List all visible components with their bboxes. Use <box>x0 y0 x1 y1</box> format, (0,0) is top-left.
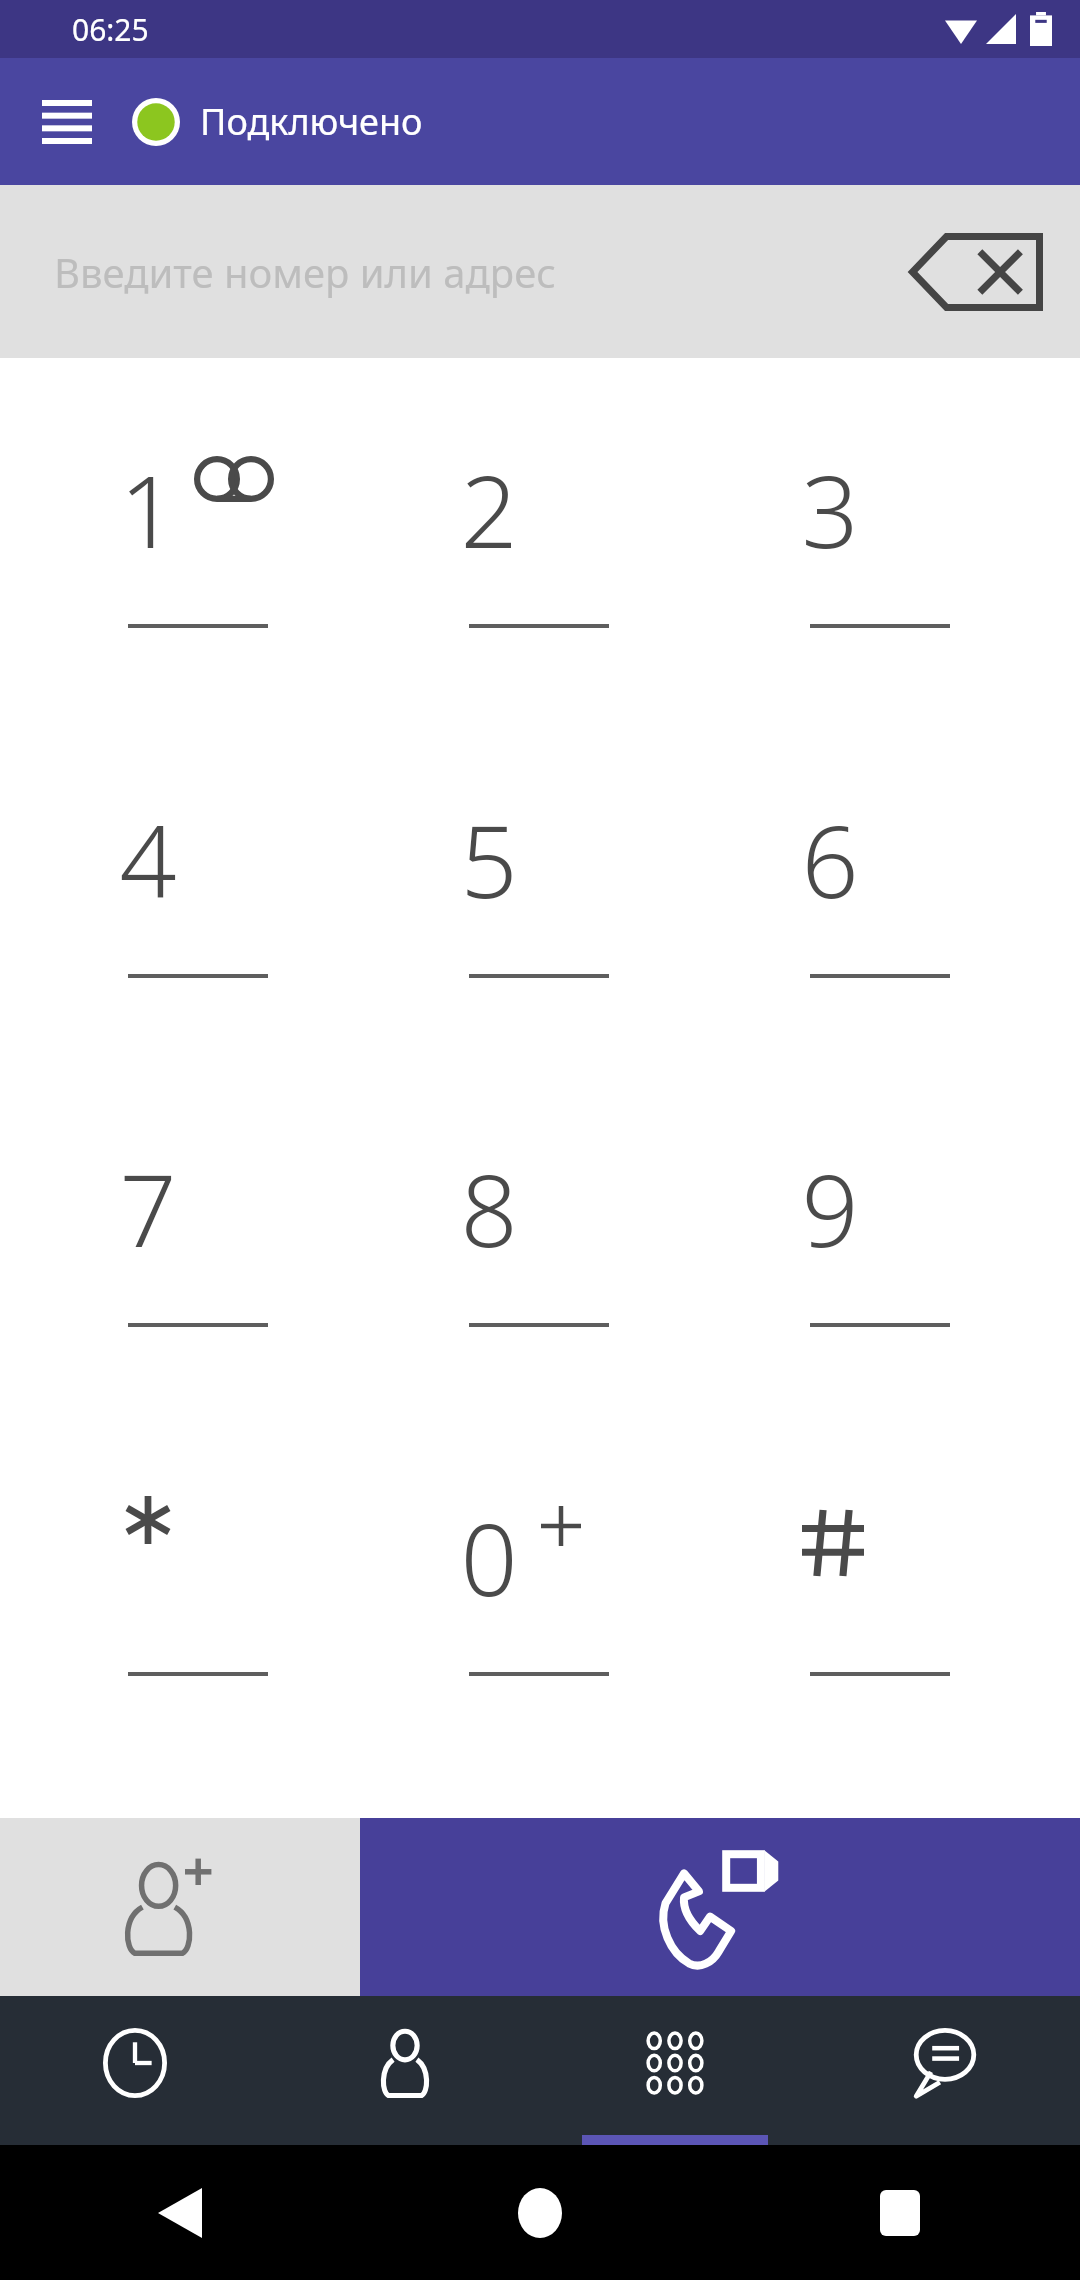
button[interactable]: Добавить контакт <box>0 1818 360 1996</box>
button[interactable]: 4 <box>28 724 368 1044</box>
button[interactable]: Контакты <box>270 1996 540 2145</box>
button[interactable]: 7 <box>28 1073 368 1393</box>
staticText: 7 <box>119 1140 177 1276</box>
staticText: 5 <box>460 791 518 927</box>
button[interactable]: Клавиатура <box>540 1996 810 2145</box>
staticText: 3 <box>801 441 859 577</box>
button[interactable]: Удалить <box>896 207 1056 337</box>
button[interactable]: 0 <box>369 1422 709 1742</box>
staticText: 8 <box>460 1140 518 1276</box>
staticText: 1 <box>119 441 177 577</box>
staticText: 06:25 <box>72 9 149 50</box>
staticText: 6 <box>801 791 859 927</box>
button[interactable]: Меню <box>22 77 112 167</box>
button[interactable]: Главный экран <box>360 2145 720 2280</box>
button[interactable]: 8 <box>369 1073 709 1393</box>
button[interactable]: Сообщения <box>810 1996 1080 2145</box>
button[interactable]: 6 <box>710 724 1050 1044</box>
button[interactable]: 5 <box>369 724 709 1044</box>
button[interactable] <box>710 1422 1050 1742</box>
button[interactable]: 3 <box>710 374 1050 694</box>
staticText: 9 <box>801 1140 859 1276</box>
staticText: 0 <box>460 1489 518 1625</box>
button[interactable]: 1 <box>28 374 368 694</box>
button[interactable]: Видеовызов <box>360 1818 1080 1996</box>
button[interactable] <box>28 1422 368 1742</box>
staticText: Подключено <box>200 97 423 146</box>
button[interactable]: Назад <box>0 2145 360 2280</box>
button[interactable]: Недавние <box>0 1996 270 2145</box>
button[interactable]: 9 <box>710 1073 1050 1393</box>
staticText: 4 <box>119 791 177 927</box>
button[interactable]: Обзор <box>720 2145 1080 2280</box>
staticText: 2 <box>460 441 518 577</box>
button[interactable]: 2 <box>369 374 709 694</box>
staticText: Введите номер или адрес <box>54 245 556 299</box>
